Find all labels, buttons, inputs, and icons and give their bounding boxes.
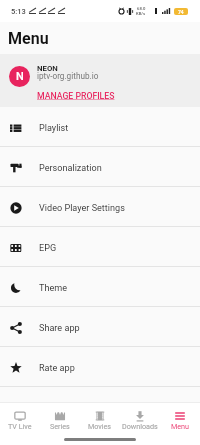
- button[interactable]: TV Live: [0, 403, 40, 415]
- staticText: Share app: [39, 323, 80, 334]
- button[interactable]: MANAGE PROFILES: [37, 91, 115, 101]
- button[interactable]: Playlist: [0, 107, 200, 146]
- staticText: 68.0: [137, 6, 146, 11]
- button[interactable]: Share app: [0, 307, 200, 346]
- staticText: MANAGE PROFILES: [37, 91, 115, 101]
- button[interactable]: Series: [40, 403, 80, 415]
- staticText: Downloads: [122, 422, 158, 430]
- button[interactable]: Video Player Settings: [0, 187, 200, 226]
- staticText: TV Live: [8, 422, 32, 430]
- staticText: Personalization: [39, 163, 102, 174]
- staticText: KB/s: [136, 11, 146, 16]
- button[interactable]: Rate app: [0, 347, 200, 386]
- staticText: NEON: [37, 64, 58, 73]
- staticText: 74: [178, 9, 184, 15]
- button[interactable]: Movies: [80, 403, 120, 415]
- button[interactable]: EPG: [0, 227, 200, 266]
- staticText: N: [16, 70, 24, 83]
- staticText: Video Player Settings: [39, 203, 125, 214]
- staticText: iptv-org.github.io: [37, 71, 99, 81]
- staticText: EPG: [39, 243, 57, 254]
- staticText: Series: [50, 422, 70, 430]
- staticText: Rate app: [39, 363, 75, 374]
- staticText: Menu: [8, 29, 49, 48]
- staticText: Menu: [171, 422, 190, 430]
- button[interactable]: Theme: [0, 267, 200, 306]
- staticText: 5:13: [11, 7, 26, 16]
- staticText: Movies: [88, 422, 112, 430]
- button[interactable]: Downloads: [120, 403, 160, 415]
- button[interactable]: Menu: [160, 403, 200, 415]
- staticText: Playlist: [39, 123, 69, 134]
- staticText: Theme: [39, 283, 68, 294]
- button[interactable]: Personalization: [0, 147, 200, 186]
